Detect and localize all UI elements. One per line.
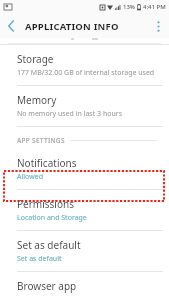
- button[interactable]: Set as default: [0, 231, 169, 271]
- button[interactable]: Browser app: [0, 272, 169, 300]
- staticText: APPLICATION INFO: [25, 20, 119, 33]
- staticText: Memory: [17, 93, 57, 107]
- button[interactable]: Storage: [0, 45, 169, 85]
- button[interactable]: Notifications: [0, 149, 169, 189]
- button[interactable]: More options: [147, 14, 169, 38]
- button[interactable]: Memory: [0, 86, 169, 126]
- staticText: Location and Storage: [17, 213, 87, 223]
- staticText: 177 MB/32.00 GB of internal storage used: [17, 68, 155, 78]
- staticText: No memory used in last 3 hours: [17, 109, 123, 119]
- staticText: 4:41 PM: [143, 3, 166, 11]
- staticText: Notifications: [17, 156, 77, 170]
- button[interactable]: Back: [0, 14, 22, 38]
- staticText: 13%: [123, 3, 135, 11]
- staticText: Storage: [17, 52, 54, 66]
- staticText: Set as default: [17, 238, 81, 252]
- staticText: Allowed: [17, 172, 43, 182]
- staticText: APP SETTINGS: [17, 136, 65, 145]
- staticText: Browser app: [17, 279, 77, 293]
- staticText: Permissions: [17, 197, 74, 211]
- button[interactable]: Permissions: [0, 190, 169, 230]
- staticText: Set as default: [17, 254, 62, 264]
